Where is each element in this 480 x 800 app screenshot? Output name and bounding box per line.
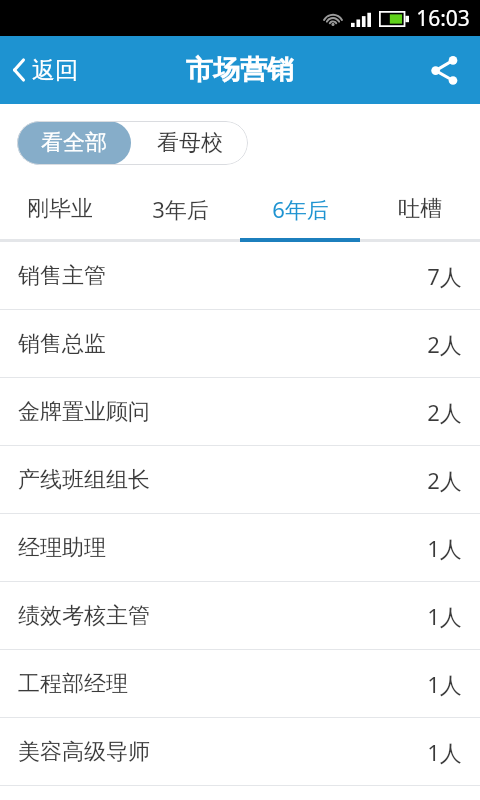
button[interactable]: 绩效考核主管 [0, 582, 480, 649]
button[interactable]: 金牌置业顾问 [0, 378, 480, 445]
staticText: 1人 [427, 601, 462, 631]
staticText: 绩效考核主管 [18, 602, 150, 630]
staticText: 1人 [427, 533, 462, 563]
staticText: 7人 [427, 261, 462, 291]
staticText: 看母校 [157, 129, 223, 157]
staticText: 看全部 [41, 129, 107, 157]
staticText: 返回 [32, 56, 78, 85]
button[interactable]: 刚毕业 [0, 182, 120, 242]
button[interactable]: 经理助理 [0, 514, 480, 581]
staticText: 2人 [427, 465, 462, 495]
staticText: 2人 [427, 329, 462, 359]
button[interactable]: 吐槽 [360, 182, 480, 242]
staticText: 销售主管 [18, 262, 106, 290]
staticText: 6年后 [272, 194, 329, 224]
staticText: 产线班组组长 [18, 466, 150, 494]
button[interactable]: Share [408, 36, 480, 104]
button[interactable]: 工程部经理 [0, 650, 480, 717]
staticText: 3年后 [152, 194, 209, 224]
button[interactable]: 3年后 [120, 182, 240, 242]
staticText: 吐槽 [398, 195, 442, 223]
staticText: 刚毕业 [27, 195, 93, 223]
button[interactable]: 销售主管 [0, 242, 480, 309]
button[interactable]: 看全部 [17, 121, 131, 165]
staticText: 16:03 [416, 4, 470, 33]
button[interactable]: 美容高级导师 [0, 718, 480, 785]
button[interactable]: 6年后 [240, 182, 360, 242]
staticText: 1人 [427, 669, 462, 699]
staticText: 美容高级导师 [18, 738, 150, 766]
staticText: 经理助理 [18, 534, 106, 562]
staticText: 金牌置业顾问 [18, 398, 150, 426]
staticText: 市场营销 [186, 53, 294, 87]
staticText: 1人 [427, 737, 462, 767]
staticText: 工程部经理 [18, 670, 128, 698]
button[interactable]: 返回 [0, 36, 92, 104]
staticText: 2人 [427, 397, 462, 427]
staticText: 销售总监 [18, 330, 106, 358]
button[interactable]: 产线班组组长 [0, 446, 480, 513]
button[interactable]: 看母校 [131, 121, 248, 165]
button[interactable]: 销售总监 [0, 310, 480, 377]
